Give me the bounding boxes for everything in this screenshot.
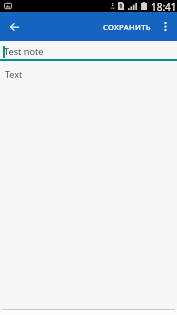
staticText: Text xyxy=(5,68,23,80)
button[interactable]: Test note xyxy=(0,41,177,61)
staticText: 18:41 xyxy=(151,0,177,12)
staticText: СОХРАНИТЬ xyxy=(103,22,151,32)
button[interactable]: More options xyxy=(153,12,177,41)
button[interactable]: Back xyxy=(0,12,28,41)
button[interactable]: Text xyxy=(0,61,177,315)
staticText: Test note xyxy=(4,45,44,58)
button[interactable]: СОХРАНИТЬ xyxy=(98,16,153,38)
